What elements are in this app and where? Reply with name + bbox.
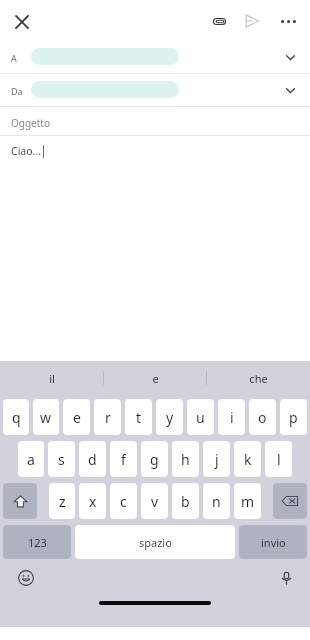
button[interactable]: A (0, 41, 310, 73)
button[interactable]: z (49, 483, 75, 519)
staticText: Da (11, 85, 23, 97)
staticText: g (150, 450, 159, 469)
button[interactable]: j (203, 441, 230, 477)
button[interactable]: a (18, 441, 44, 477)
staticText: q (12, 408, 21, 427)
button[interactable]: r (94, 399, 121, 435)
staticText: il (49, 371, 55, 386)
staticText: h (181, 450, 190, 469)
button[interactable]: 123 (3, 525, 71, 559)
button[interactable]: Attach file (203, 5, 235, 37)
staticText: c (120, 492, 127, 511)
button[interactable]: Expand A (278, 45, 302, 69)
button[interactable]: x (79, 483, 106, 519)
button[interactable]: k (234, 441, 261, 477)
staticText: k (244, 450, 252, 469)
staticText: che (249, 371, 268, 386)
button[interactable]: More options (272, 5, 304, 37)
button[interactable]: f (110, 441, 137, 477)
button[interactable]: o (249, 399, 276, 435)
button[interactable]: Close (6, 6, 38, 38)
staticText: t (136, 408, 142, 427)
staticText: d (88, 450, 97, 469)
button[interactable]: Expand Da (278, 78, 302, 102)
button[interactable]: b (172, 483, 199, 519)
staticText: e (73, 408, 81, 427)
staticText: x (89, 492, 97, 511)
staticText: A (11, 52, 17, 64)
button[interactable]: p (280, 399, 307, 435)
button[interactable]: il (0, 361, 104, 395)
staticText: spazio (139, 535, 172, 550)
button[interactable]: n (203, 483, 230, 519)
button[interactable]: m (234, 483, 261, 519)
button[interactable]: c (110, 483, 137, 519)
button[interactable]: s (48, 441, 75, 477)
staticText: m (241, 492, 255, 511)
button[interactable]: y (156, 399, 183, 435)
staticText: l (277, 450, 281, 469)
button[interactable]: che (207, 361, 310, 395)
staticText: a (27, 450, 35, 469)
button[interactable]: invio (239, 525, 307, 559)
staticText: u (196, 408, 205, 427)
button[interactable]: u (187, 399, 214, 435)
button[interactable]: e (104, 361, 207, 395)
staticText: j (215, 450, 219, 469)
button[interactable]: Backspace (273, 483, 307, 519)
staticText: n (212, 492, 221, 511)
staticText: v (151, 492, 159, 511)
staticText: w (40, 408, 52, 427)
button[interactable]: spazio (75, 525, 235, 559)
button[interactable]: Da (0, 74, 310, 106)
button[interactable]: d (79, 441, 106, 477)
staticText: o (258, 408, 267, 427)
staticText: Oggetto (11, 116, 51, 130)
staticText: invio (261, 535, 286, 550)
button[interactable]: Oggetto (0, 107, 310, 135)
button[interactable]: i (218, 399, 245, 435)
staticText: b (181, 492, 190, 511)
staticText: y (166, 408, 174, 427)
button[interactable]: Ciao... (0, 136, 310, 361)
staticText: 123 (28, 535, 47, 550)
button[interactable]: Voice input (272, 564, 300, 592)
staticText: s (58, 450, 65, 469)
staticText: p (289, 408, 298, 427)
staticText: e (152, 371, 159, 386)
button[interactable]: e (63, 399, 90, 435)
button[interactable]: t (125, 399, 152, 435)
staticText: i (230, 408, 234, 427)
button[interactable]: q (3, 399, 29, 435)
button[interactable]: Shift (3, 483, 37, 519)
button[interactable]: l (265, 441, 292, 477)
button[interactable]: Emoji (12, 564, 40, 592)
button[interactable]: v (141, 483, 168, 519)
button[interactable]: h (172, 441, 199, 477)
button[interactable]: g (141, 441, 168, 477)
button[interactable]: w (33, 399, 59, 435)
staticText: f (121, 450, 126, 469)
staticText: r (105, 408, 111, 427)
staticText: Ciao... (11, 144, 42, 158)
staticText: z (59, 492, 66, 511)
button[interactable]: Send (236, 5, 268, 37)
